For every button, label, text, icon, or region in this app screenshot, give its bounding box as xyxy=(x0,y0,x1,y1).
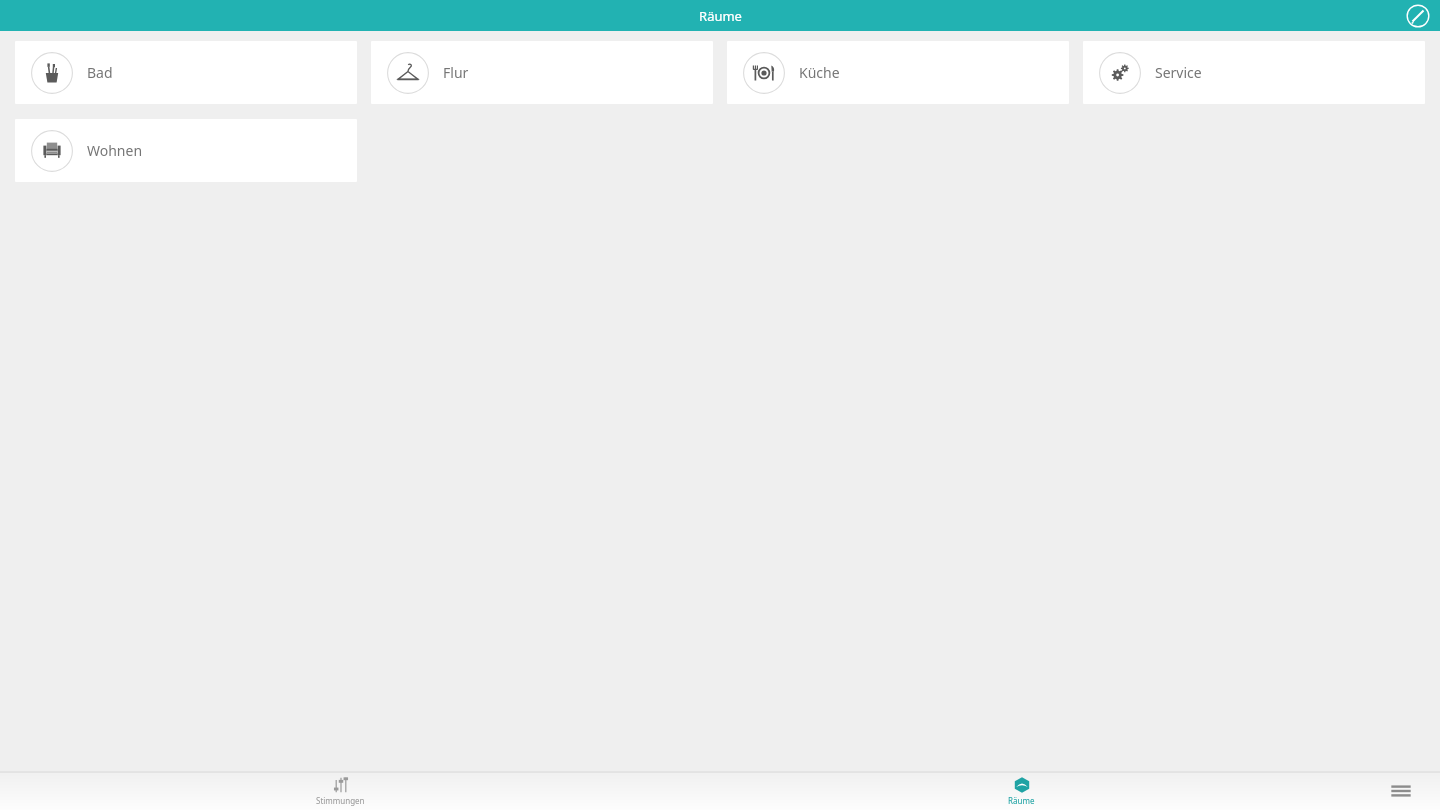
staticText: Service xyxy=(1155,63,1202,82)
button[interactable]: Stimmungen xyxy=(0,772,681,810)
staticText: Wohnen xyxy=(87,141,143,160)
staticText: Räume xyxy=(699,7,742,25)
button[interactable]: Flur xyxy=(371,41,713,104)
button[interactable]: Bearbeiten xyxy=(1404,2,1432,30)
button[interactable]: Bad xyxy=(15,41,357,104)
button[interactable]: Räume xyxy=(681,772,1362,810)
staticText: Bad xyxy=(87,63,113,82)
staticText: Flur xyxy=(443,63,469,82)
staticText: Küche xyxy=(799,63,840,82)
button[interactable]: Wohnen xyxy=(15,119,357,182)
staticText: Stimmungen xyxy=(316,795,365,806)
staticText: Räume xyxy=(1008,795,1035,806)
button[interactable]: Service xyxy=(1083,41,1425,104)
button[interactable]: Küche xyxy=(727,41,1069,104)
button[interactable]: Menü xyxy=(1362,772,1440,810)
